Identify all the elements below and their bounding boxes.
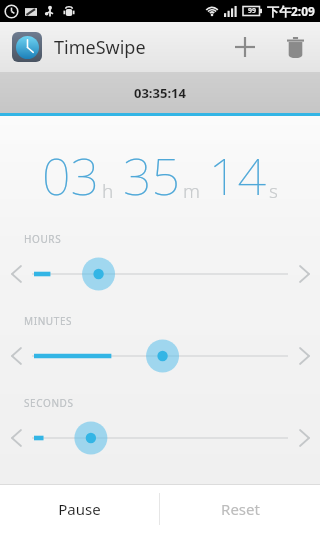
button[interactable]: Increase SECONDS	[288, 419, 320, 457]
staticText: s	[269, 178, 278, 204]
button[interactable]: Pause	[0, 485, 159, 533]
staticText: 下午2:09	[267, 3, 315, 19]
staticText: 14	[209, 142, 266, 210]
staticText: m	[183, 178, 200, 204]
button[interactable]	[32, 255, 288, 293]
staticText: 03	[42, 142, 99, 210]
button[interactable]: 03:35:14	[0, 72, 320, 113]
staticText: Reset	[221, 499, 260, 519]
staticText: 99	[248, 6, 257, 16]
staticText: h	[102, 178, 114, 204]
button[interactable]: Decrease HOURS	[0, 255, 32, 293]
staticText: 03:35:14	[134, 84, 186, 102]
button[interactable]	[32, 419, 288, 457]
staticText: 35	[123, 142, 180, 210]
staticText: TimeSwipe	[54, 35, 146, 60]
staticText: Pause	[58, 499, 101, 519]
button[interactable]: Increase HOURS	[288, 255, 320, 293]
button[interactable]: Delete timer	[270, 22, 320, 72]
button[interactable]: Reset	[160, 485, 320, 533]
button[interactable]: Decrease MINUTES	[0, 337, 32, 375]
staticText: SECONDS	[24, 396, 74, 410]
button[interactable]: Add timer	[220, 22, 270, 72]
button[interactable]: Decrease SECONDS	[0, 419, 32, 457]
staticText: HOURS	[24, 232, 62, 246]
button[interactable]: Increase MINUTES	[288, 337, 320, 375]
staticText: MINUTES	[24, 314, 73, 328]
button[interactable]	[32, 337, 288, 375]
